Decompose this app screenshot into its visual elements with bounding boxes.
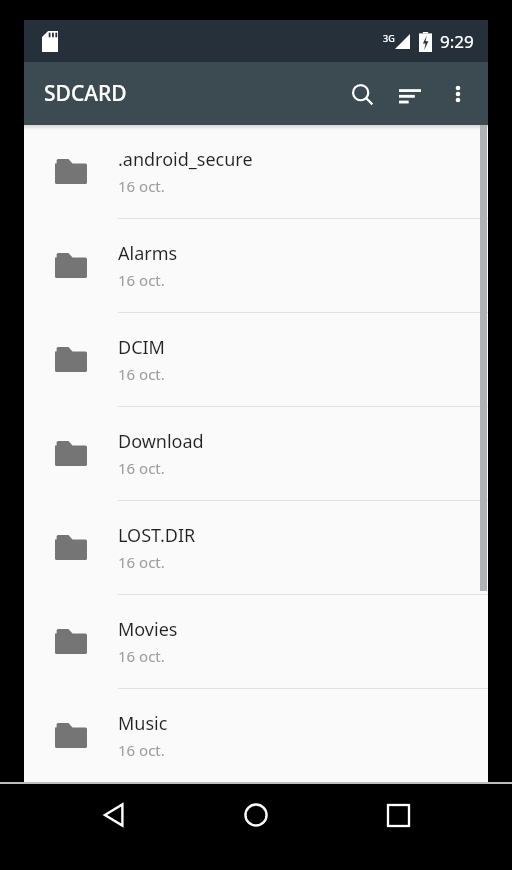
staticText: 16 oct. (118, 552, 165, 572)
staticText: 16 oct. (118, 270, 165, 290)
button[interactable]: LOST.DIR (24, 501, 488, 594)
staticText: 3G (383, 32, 395, 44)
button[interactable]: Movies (24, 595, 488, 688)
staticText: 16 oct. (118, 740, 165, 760)
staticText: LOST.DIR (118, 523, 196, 548)
staticText: Movies (118, 617, 178, 642)
staticText: .android_secure (118, 147, 253, 172)
button[interactable]: Back (86, 799, 142, 855)
button[interactable]: Home (228, 799, 284, 855)
button[interactable]: Recent apps (370, 799, 426, 855)
button[interactable]: Search (338, 70, 386, 118)
button[interactable]: .android_secure (24, 125, 488, 218)
staticText: Alarms (118, 241, 178, 266)
staticText: 9:29 (440, 30, 474, 53)
staticText: Music (118, 711, 168, 736)
staticText: 16 oct. (118, 364, 165, 384)
staticText: 16 oct. (118, 458, 165, 478)
staticText: Download (118, 429, 204, 454)
staticText: DCIM (118, 335, 165, 360)
button[interactable]: Sort (386, 70, 434, 118)
button[interactable]: Music (24, 689, 488, 782)
button[interactable]: More options (434, 70, 482, 118)
staticText: 16 oct. (118, 646, 165, 666)
staticText: 16 oct. (118, 176, 165, 196)
button[interactable]: Download (24, 407, 488, 500)
button[interactable]: Alarms (24, 219, 488, 312)
button[interactable]: DCIM (24, 313, 488, 406)
staticText: SDCARD (44, 79, 127, 108)
